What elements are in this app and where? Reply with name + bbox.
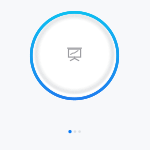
button[interactable]: Reports bbox=[0, 0, 150, 150]
